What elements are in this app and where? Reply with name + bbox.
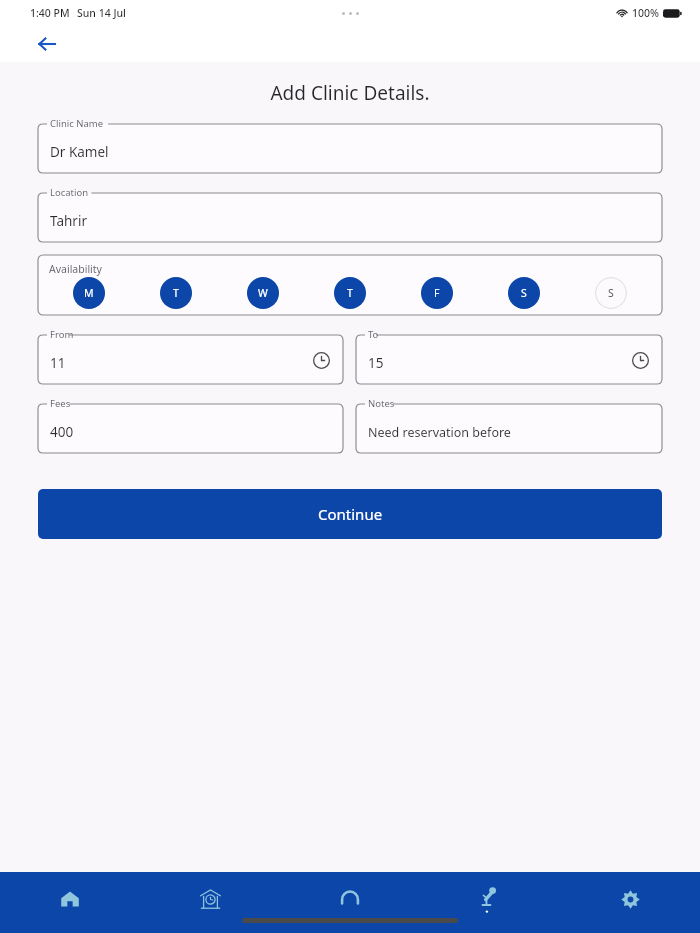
staticText: Clinic Name (50, 117, 104, 130)
button[interactable]: Back (32, 29, 62, 59)
button[interactable]: F (421, 277, 453, 309)
button[interactable]: Clinics (140, 878, 280, 920)
button[interactable]: S (508, 277, 540, 309)
staticText: S (521, 286, 527, 300)
staticText: T (347, 286, 353, 300)
button[interactable] (356, 335, 662, 384)
staticText: From (50, 328, 74, 341)
staticText: Add Clinic Details. (0, 80, 700, 106)
button[interactable]: Pick time (310, 349, 332, 371)
button[interactable]: Settings (560, 878, 700, 920)
staticText: F (434, 286, 440, 300)
button[interactable]: S (595, 277, 627, 309)
button[interactable]: Support (280, 878, 420, 920)
staticText: Location (50, 186, 89, 199)
staticText: Fees (50, 397, 71, 410)
staticText: 400 (50, 423, 74, 441)
button[interactable]: T (334, 277, 366, 309)
staticText: Need reservation before (368, 424, 511, 441)
staticText: 11 (50, 354, 66, 372)
staticText: Dr Kamel (50, 143, 109, 161)
staticText: Continue (318, 504, 383, 524)
staticText: Availability (49, 262, 102, 276)
button[interactable]: Voice (420, 878, 560, 920)
button[interactable]: M (73, 277, 105, 309)
button[interactable]: T (160, 277, 192, 309)
button[interactable] (38, 124, 662, 173)
button[interactable]: Continue (38, 489, 662, 539)
staticText: T (173, 286, 179, 300)
staticText: 15 (368, 354, 384, 372)
button[interactable] (38, 193, 662, 242)
button[interactable] (356, 404, 662, 453)
staticText: M (84, 286, 94, 300)
staticText: 100% (632, 6, 659, 20)
staticText: S (608, 286, 614, 300)
staticText: W (258, 286, 268, 300)
staticText: Notes (368, 397, 395, 410)
staticText: Tahrir (50, 212, 87, 230)
button[interactable] (38, 335, 343, 384)
button[interactable]: Home (0, 878, 140, 920)
staticText: To (368, 328, 379, 341)
staticText: 1:40 PM (30, 6, 70, 20)
staticText: Sun 14 Jul (77, 6, 126, 20)
button[interactable] (38, 404, 343, 453)
button[interactable]: W (247, 277, 279, 309)
button[interactable]: Pick time (629, 349, 651, 371)
